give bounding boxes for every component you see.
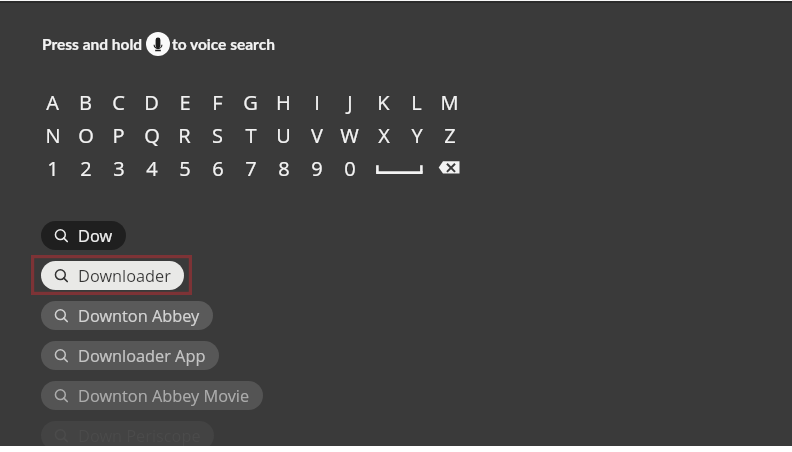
other: Voice search microphone [146,32,170,56]
button[interactable]: Downloader [41,261,184,290]
staticText: M [440,89,459,116]
button[interactable]: Downton Abbey [41,301,213,330]
button[interactable]: 5 [169,153,200,183]
button[interactable]: Downton Abbey Movie [41,381,263,410]
button[interactable]: A [37,87,68,117]
staticText: 7 [245,155,257,182]
button[interactable]: B [70,87,101,117]
button[interactable]: R [169,120,200,150]
button[interactable]: D [136,87,167,117]
button[interactable]: 2 [70,153,101,183]
staticText: Downton Abbey [78,305,200,327]
staticText: J [347,89,353,116]
staticText: F [212,89,223,116]
staticText: H [276,89,291,116]
button[interactable]: 0 [334,153,365,183]
button[interactable]: Y [401,120,432,150]
button[interactable]: 4 [136,153,167,183]
staticText: O [78,122,94,149]
button[interactable]: 3 [103,153,134,183]
staticText: 2 [80,155,92,182]
button[interactable]: 8 [268,153,299,183]
button[interactable]: O [70,120,101,150]
button[interactable]: Dow [41,221,126,250]
staticText: 4 [146,155,158,182]
staticText: A [46,89,59,116]
staticText: X [378,122,390,149]
button[interactable]: Backspace [433,154,465,181]
staticText: E [179,89,191,116]
button[interactable]: Down Periscope [41,421,214,450]
staticText: B [79,89,92,116]
button[interactable]: J [334,87,365,117]
staticText: L [411,89,422,116]
staticText: N [45,122,61,149]
button[interactable]: H [268,87,299,117]
button[interactable]: K [368,87,399,117]
button[interactable]: 1 [37,153,68,183]
staticText: D [144,89,159,116]
staticText: Q [144,122,160,149]
button[interactable]: 6 [202,153,233,183]
staticText: P [112,122,125,149]
button[interactable]: M [434,87,465,117]
staticText: C [112,89,125,116]
button[interactable]: I [301,87,332,117]
staticText: Dow [78,225,113,247]
staticText: 6 [212,155,224,182]
staticText: U [276,122,291,149]
button[interactable]: N [37,120,68,150]
button[interactable]: U [268,120,299,150]
staticText: 1 [47,155,59,182]
button[interactable]: E [169,87,200,117]
staticText: Downloader App [78,345,206,367]
staticText: 8 [278,155,290,182]
staticText: to voice search [172,35,275,54]
staticText: V [311,122,323,149]
button[interactable]: 9 [301,153,332,183]
button[interactable]: X [368,120,399,150]
button[interactable]: P [103,120,134,150]
button[interactable]: Press and hold [42,32,275,56]
staticText: W [340,122,359,149]
staticText: Downloader [78,265,171,287]
button[interactable]: Q [136,120,167,150]
staticText: Down Periscope [78,425,201,447]
staticText: T [245,122,257,149]
staticText: 5 [179,155,191,182]
staticText: S [212,122,223,149]
button[interactable]: T [235,120,266,150]
button[interactable]: S [202,120,233,150]
button[interactable]: Downloader App [41,341,219,370]
button[interactable]: Space [371,154,429,182]
button[interactable]: Z [434,120,465,150]
staticText: 0 [344,155,356,182]
staticText: K [377,89,390,116]
staticText: Y [411,122,423,149]
staticText: Z [444,122,456,149]
staticText: G [243,89,258,116]
staticText: I [314,89,320,116]
staticText: 9 [311,155,323,182]
staticText: 3 [113,155,125,182]
button[interactable]: V [301,120,332,150]
button[interactable]: L [401,87,432,117]
staticText: Downton Abbey Movie [78,385,250,407]
button[interactable]: 7 [235,153,266,183]
staticText: R [178,122,191,149]
button[interactable]: W [334,120,365,150]
button[interactable]: C [103,87,134,117]
staticText: Press and hold [42,35,143,54]
button[interactable]: G [235,87,266,117]
button[interactable]: F [202,87,233,117]
